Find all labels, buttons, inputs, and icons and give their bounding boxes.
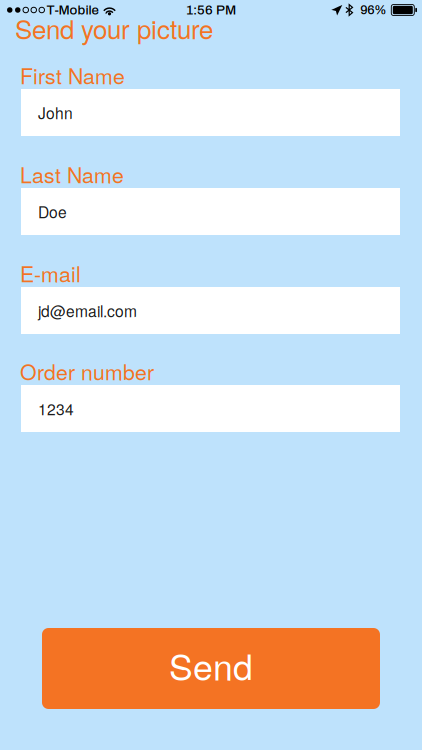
staticText: Send your picture — [15, 9, 213, 47]
staticText: Doe — [38, 200, 67, 223]
staticText: First Name — [20, 60, 125, 90]
staticText: Last Name — [20, 159, 124, 189]
staticText: T-Mobile — [46, 3, 98, 17]
staticText: E-mail — [20, 258, 81, 288]
staticText: Send — [169, 639, 253, 691]
staticText: 96% — [360, 3, 386, 17]
button[interactable]: Send — [42, 628, 380, 709]
staticText: John — [38, 101, 73, 124]
staticText: jd@email.com — [38, 299, 137, 322]
staticText: Order number — [20, 356, 154, 386]
staticText: 1:56 PM — [186, 3, 236, 17]
staticText: 1234 — [38, 397, 74, 420]
